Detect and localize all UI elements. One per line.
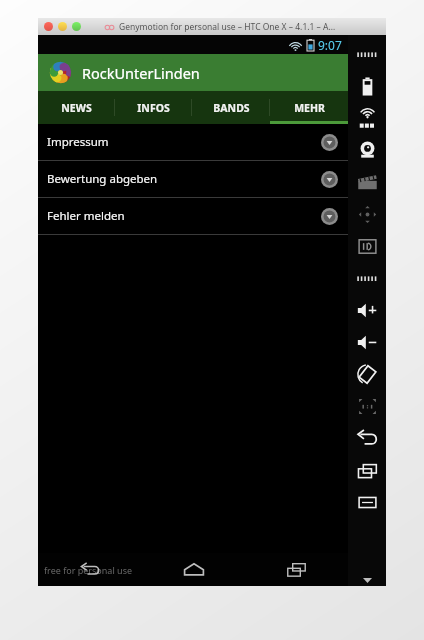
button[interactable]: Camera [348, 134, 386, 166]
staticText: INFOS [137, 101, 170, 115]
staticText: MEHR [294, 101, 325, 115]
button[interactable]: Back [348, 422, 386, 454]
button[interactable]: GPS [348, 102, 386, 134]
staticText: free for personal use [44, 564, 133, 576]
button[interactable]: Volume down [348, 326, 386, 358]
staticText: Genymotion for personal use – HTC One X … [119, 21, 336, 33]
button[interactable]: Identifiers [348, 230, 386, 262]
button[interactable]: Rotate screen [348, 358, 386, 390]
staticText: NEWS [61, 101, 92, 115]
button[interactable]: Impressum [38, 124, 348, 160]
button[interactable]: Recent apps [245, 553, 348, 586]
button[interactable]: Scale 1:1 [348, 390, 386, 422]
button[interactable]: D-pad [348, 198, 386, 230]
button[interactable]: Recent apps [348, 454, 386, 486]
button[interactable]: Volume up [348, 294, 386, 326]
button[interactable]: Menu [348, 486, 386, 518]
button[interactable]: MEHR [270, 91, 348, 124]
staticText: Bewertung abgeben [47, 171, 158, 187]
button[interactable]: Battery [348, 70, 386, 102]
button[interactable]: Network [348, 262, 386, 294]
staticText: RockUnterLinden [82, 63, 200, 83]
button[interactable]: Bewertung abgeben [38, 161, 348, 197]
button[interactable]: NEWS [38, 91, 115, 124]
staticText: Impressum [47, 134, 109, 150]
button[interactable]: BANDS [192, 91, 270, 124]
button[interactable]: Fehler melden [38, 198, 348, 234]
button[interactable]: INFOS [115, 91, 192, 124]
button[interactable]: RockUnterLinden [38, 54, 348, 91]
button[interactable]: Signal strength [348, 38, 386, 70]
staticText: Fehler melden [47, 208, 125, 224]
button[interactable]: Video recording [348, 166, 386, 198]
button[interactable]: Back [38, 553, 142, 586]
staticText: BANDS [213, 101, 250, 115]
button[interactable]: Home [142, 553, 245, 586]
staticText: 9:07 [318, 37, 342, 53]
